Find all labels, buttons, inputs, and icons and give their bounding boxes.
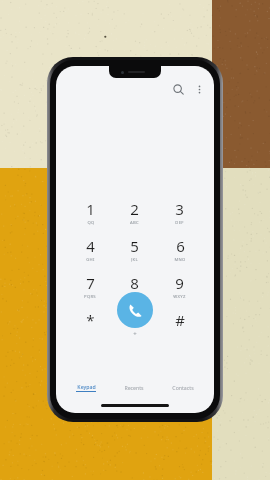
button[interactable]: Recents (116, 381, 152, 394)
staticText: # (175, 310, 185, 330)
staticText: Keypad (77, 383, 96, 390)
staticText: WXYZ (173, 294, 186, 299)
button[interactable]: 9 (157, 273, 202, 299)
staticText: 9 (175, 273, 184, 293)
button[interactable]: Contacts (164, 381, 202, 394)
staticText: MNO (174, 257, 186, 262)
staticText: ABC (130, 220, 139, 225)
staticText: Recents (124, 384, 144, 391)
staticText: 3 (175, 199, 184, 219)
button[interactable]: 2 (112, 199, 157, 225)
button[interactable]: 7 (68, 273, 112, 299)
button[interactable]: 4 (68, 236, 112, 262)
staticText: + (133, 330, 137, 336)
button[interactable]: # (157, 310, 202, 336)
staticText: 4 (86, 236, 95, 256)
staticText: 5 (130, 236, 139, 256)
button[interactable]: * (68, 310, 112, 336)
button[interactable]: 0 (112, 310, 157, 336)
button[interactable]: 6 (157, 236, 202, 262)
button[interactable]: 5 (112, 236, 157, 262)
button[interactable]: Call (117, 292, 153, 328)
staticText: PQRS (84, 294, 96, 299)
staticText: 1 (86, 199, 95, 219)
staticText: 8 (130, 273, 139, 293)
staticText: 7 (86, 273, 95, 293)
staticText: Contacts (172, 384, 194, 391)
staticText: 0 (130, 310, 139, 330)
staticText: GHI (86, 257, 95, 262)
button[interactable]: Keypad (68, 380, 104, 395)
button[interactable]: Search (169, 80, 187, 98)
button[interactable]: More options (190, 80, 208, 98)
staticText: JKL (131, 257, 138, 262)
button[interactable]: 3 (157, 199, 202, 225)
staticText: QQ (87, 220, 95, 225)
button[interactable]: 1 (68, 199, 112, 225)
staticText: * (86, 310, 95, 330)
staticText: 6 (176, 236, 185, 256)
staticText: DEF (175, 220, 184, 225)
staticText: 2 (130, 199, 139, 219)
button[interactable]: 8 (112, 273, 157, 299)
